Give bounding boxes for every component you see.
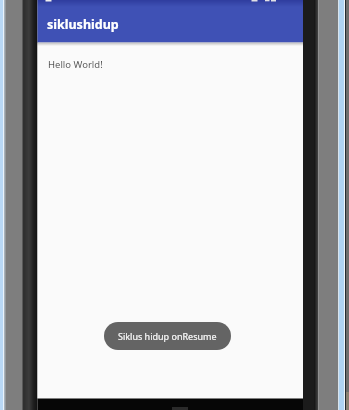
staticText: Hello World! bbox=[48, 58, 103, 71]
staticText: siklushidup bbox=[47, 16, 119, 33]
button[interactable]: Siklus hidup onResume bbox=[104, 322, 231, 350]
staticText: Siklus hidup onResume bbox=[118, 330, 217, 342]
